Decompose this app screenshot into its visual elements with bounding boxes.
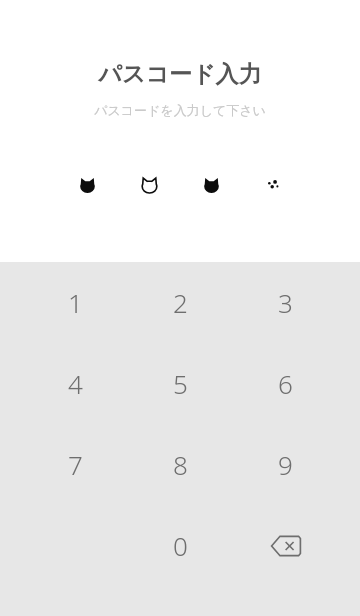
staticText: 1 bbox=[68, 285, 83, 320]
button[interactable]: 0 bbox=[128, 505, 233, 586]
button[interactable]: Backspace bbox=[233, 505, 338, 586]
button[interactable]: 8 bbox=[128, 424, 233, 505]
staticText: 4 bbox=[68, 366, 83, 401]
staticText: パスコードを入力して下さい bbox=[94, 102, 266, 118]
button[interactable]: 5 bbox=[128, 343, 233, 424]
staticText: 0 bbox=[173, 528, 188, 563]
button[interactable]: 2 bbox=[128, 262, 233, 343]
button[interactable]: 3 bbox=[233, 262, 338, 343]
staticText: パスコード入力 bbox=[98, 60, 262, 89]
button[interactable]: 7 bbox=[22, 424, 128, 505]
staticText: 5 bbox=[173, 366, 188, 401]
button[interactable]: 6 bbox=[233, 343, 338, 424]
button[interactable]: 4 bbox=[22, 343, 128, 424]
staticText: 8 bbox=[173, 447, 188, 482]
button[interactable]: 9 bbox=[233, 424, 338, 505]
staticText: 2 bbox=[173, 285, 188, 320]
staticText: 6 bbox=[278, 366, 293, 401]
staticText: 3 bbox=[278, 285, 293, 320]
staticText: 7 bbox=[68, 447, 83, 482]
button[interactable]: 1 bbox=[22, 262, 128, 343]
staticText: 9 bbox=[278, 447, 293, 482]
